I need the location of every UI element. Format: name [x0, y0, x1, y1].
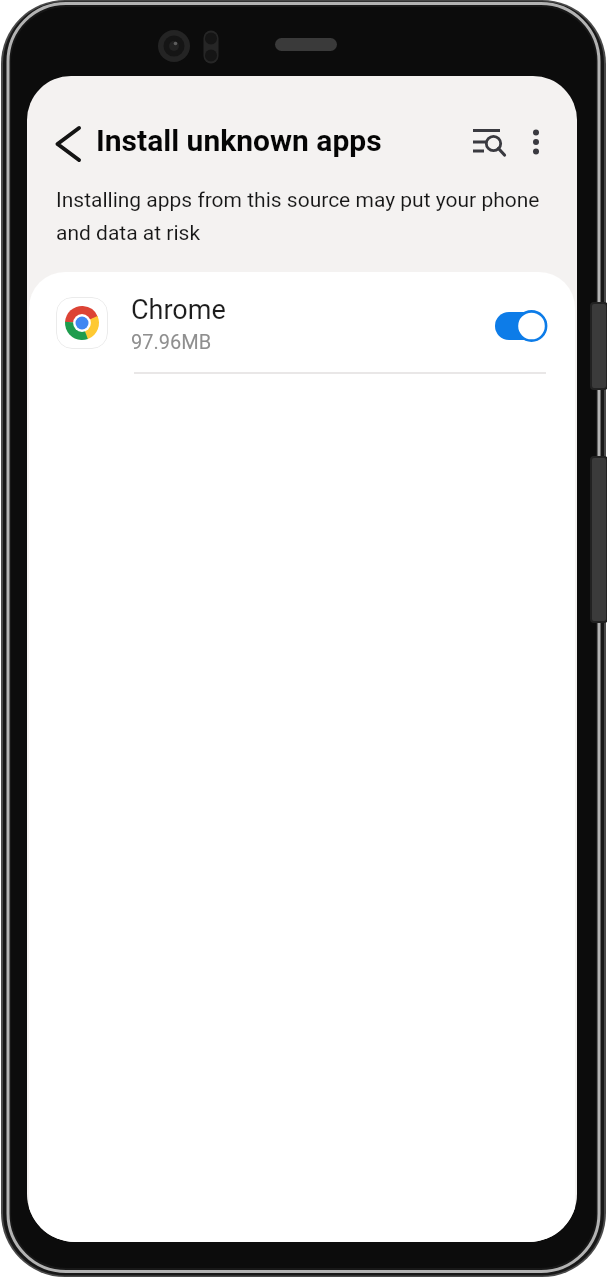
button[interactable] — [457, 116, 517, 172]
staticText: Install unknown apps — [96, 123, 382, 158]
button[interactable] — [29, 272, 575, 372]
staticText: Chrome — [131, 294, 226, 326]
staticText: and data at risk — [56, 221, 201, 246]
button[interactable] — [43, 114, 93, 170]
button[interactable] — [518, 116, 554, 172]
staticText: Installing apps from this source may put… — [56, 188, 540, 213]
staticText: 97.96MB — [131, 330, 212, 353]
button[interactable] — [489, 304, 553, 348]
